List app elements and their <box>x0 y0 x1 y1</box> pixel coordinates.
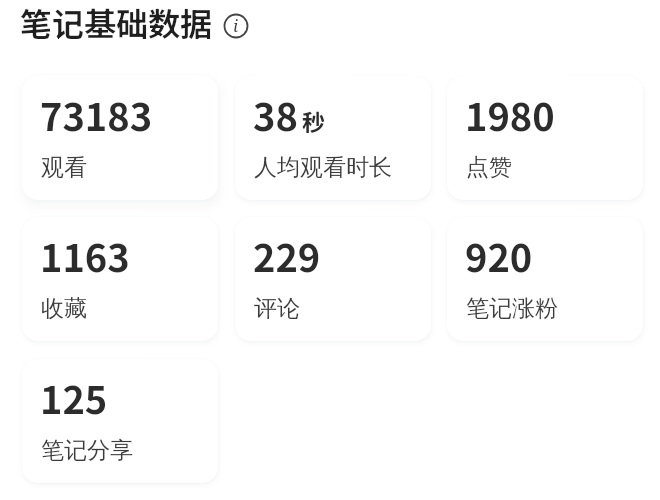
staticText: 125 <box>40 370 108 425</box>
staticText: 收藏 <box>41 294 87 323</box>
staticText: 秒 <box>302 104 325 137</box>
button[interactable]: 1163 <box>22 217 218 341</box>
button[interactable]: 38 <box>235 76 431 200</box>
button[interactable]: 920 <box>447 217 643 341</box>
staticText: i <box>233 14 239 37</box>
staticText: 笔记分享 <box>41 436 133 465</box>
staticText: 1163 <box>40 228 130 283</box>
staticText: 人均观看时长 <box>254 153 392 182</box>
button[interactable]: 125 <box>22 359 218 483</box>
staticText: 73183 <box>40 87 153 142</box>
staticText: 1980 <box>465 87 555 142</box>
button[interactable]: 1980 <box>447 76 643 200</box>
staticText: 38 <box>253 87 298 142</box>
button[interactable]: Info <box>222 12 250 40</box>
staticText: 笔记基础数据 <box>20 0 213 45</box>
staticText: 920 <box>465 228 533 283</box>
staticText: 评论 <box>254 294 300 323</box>
staticText: 点赞 <box>466 153 512 182</box>
staticText: 笔记涨粉 <box>466 294 558 323</box>
button[interactable]: 229 <box>235 217 431 341</box>
staticText: 229 <box>253 228 321 283</box>
staticText: 观看 <box>41 153 87 182</box>
button[interactable]: 73183 <box>22 76 218 200</box>
